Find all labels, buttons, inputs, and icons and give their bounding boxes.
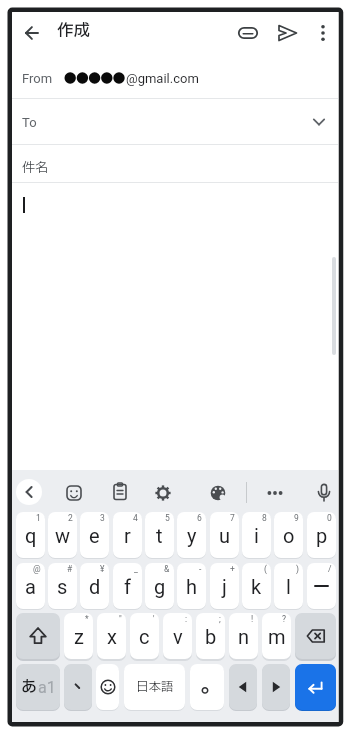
staticText: ? — [282, 614, 287, 624]
button[interactable]: t — [145, 512, 174, 558]
button[interactable]: x — [97, 613, 126, 659]
staticText: ! — [251, 614, 254, 624]
staticText: 作成 — [57, 19, 90, 44]
button[interactable] — [260, 478, 290, 508]
button[interactable] — [16, 613, 60, 659]
staticText: a — [25, 575, 36, 598]
button[interactable]: あ — [16, 664, 60, 710]
button[interactable]: r — [113, 512, 142, 558]
button[interactable]: v — [163, 613, 192, 659]
staticText: + — [230, 564, 235, 574]
button[interactable]: y — [177, 512, 206, 558]
button[interactable]: z — [64, 613, 93, 659]
staticText: あ — [21, 675, 38, 699]
button[interactable] — [309, 478, 339, 508]
staticText: r — [124, 524, 131, 547]
staticText: 8 — [262, 513, 267, 523]
button[interactable] — [295, 664, 336, 710]
button[interactable]: h — [177, 563, 206, 609]
staticText: s — [57, 575, 68, 598]
button[interactable] — [269, 15, 305, 51]
button[interactable]: s — [48, 563, 77, 609]
staticText: 日本語 — [136, 678, 174, 697]
button[interactable] — [59, 478, 89, 508]
button[interactable]: f — [113, 563, 142, 609]
staticText: 7 — [230, 513, 235, 523]
staticText: ¥ — [100, 564, 105, 574]
button[interactable] — [262, 664, 290, 710]
staticText: g — [154, 575, 166, 598]
button[interactable]: a — [16, 563, 45, 609]
button[interactable]: g — [145, 563, 174, 609]
staticText: ' — [153, 614, 155, 624]
button[interactable] — [14, 15, 50, 51]
button[interactable] — [295, 613, 336, 659]
staticText: From — [22, 71, 53, 86]
button[interactable] — [12, 183, 338, 470]
button[interactable] — [64, 664, 92, 710]
staticText: * — [85, 614, 89, 624]
button[interactable]: n — [229, 613, 258, 659]
staticText: _ — [134, 564, 138, 574]
button[interactable] — [230, 15, 266, 51]
staticText: 件名 — [22, 158, 49, 177]
button[interactable]: / — [307, 563, 336, 609]
button[interactable] — [16, 479, 42, 505]
staticText: n — [238, 625, 250, 648]
button[interactable]: u — [210, 512, 239, 558]
staticText: o — [283, 524, 295, 547]
staticText: i — [254, 524, 259, 547]
staticText: d — [89, 575, 101, 598]
staticText: # — [67, 564, 73, 574]
staticText: y — [187, 524, 197, 547]
staticText: - — [199, 564, 202, 574]
staticText: ) — [296, 564, 299, 574]
button[interactable]: c — [130, 613, 159, 659]
button[interactable] — [305, 15, 341, 51]
staticText: b — [205, 625, 217, 648]
button[interactable]: j — [210, 563, 239, 609]
staticText: t — [156, 524, 163, 547]
staticText: : — [185, 614, 188, 624]
staticText: 9 — [294, 513, 299, 523]
button[interactable]: q — [16, 512, 45, 558]
button[interactable]: i — [242, 512, 271, 558]
button[interactable]: o — [274, 512, 303, 558]
staticText: z — [74, 625, 84, 648]
button[interactable] — [190, 664, 224, 710]
button[interactable]: e — [80, 512, 109, 558]
staticText: ( — [264, 564, 267, 574]
button[interactable]: p — [307, 512, 336, 558]
button[interactable]: 日本語 — [124, 664, 185, 710]
button[interactable]: d — [80, 563, 109, 609]
staticText: 2 — [68, 513, 73, 523]
button[interactable] — [307, 110, 331, 134]
staticText: x — [107, 625, 117, 648]
staticText: u — [219, 524, 231, 547]
button[interactable] — [148, 478, 178, 508]
staticText: & — [164, 564, 170, 574]
staticText: k — [251, 575, 262, 598]
staticText: c — [139, 625, 150, 648]
button[interactable] — [229, 664, 257, 710]
staticText: w — [55, 524, 71, 547]
staticText: 4 — [133, 513, 138, 523]
staticText: l — [286, 575, 291, 598]
button[interactable]: m — [262, 613, 291, 659]
button[interactable]: k — [242, 563, 271, 609]
staticText: ; — [219, 614, 221, 624]
button[interactable] — [105, 477, 135, 507]
button[interactable] — [96, 664, 119, 710]
button[interactable]: w — [48, 512, 77, 558]
staticText: @gmail.com — [126, 71, 199, 86]
staticText: m — [268, 625, 286, 648]
button[interactable]: l — [274, 563, 303, 609]
button[interactable]: b — [196, 613, 225, 659]
staticText: / — [328, 564, 332, 574]
staticText: 1 — [36, 513, 41, 523]
staticText: 3 — [100, 513, 105, 523]
staticText: 6 — [197, 513, 202, 523]
button[interactable] — [12, 99, 338, 144]
staticText: e — [89, 524, 100, 547]
button[interactable] — [203, 478, 233, 508]
